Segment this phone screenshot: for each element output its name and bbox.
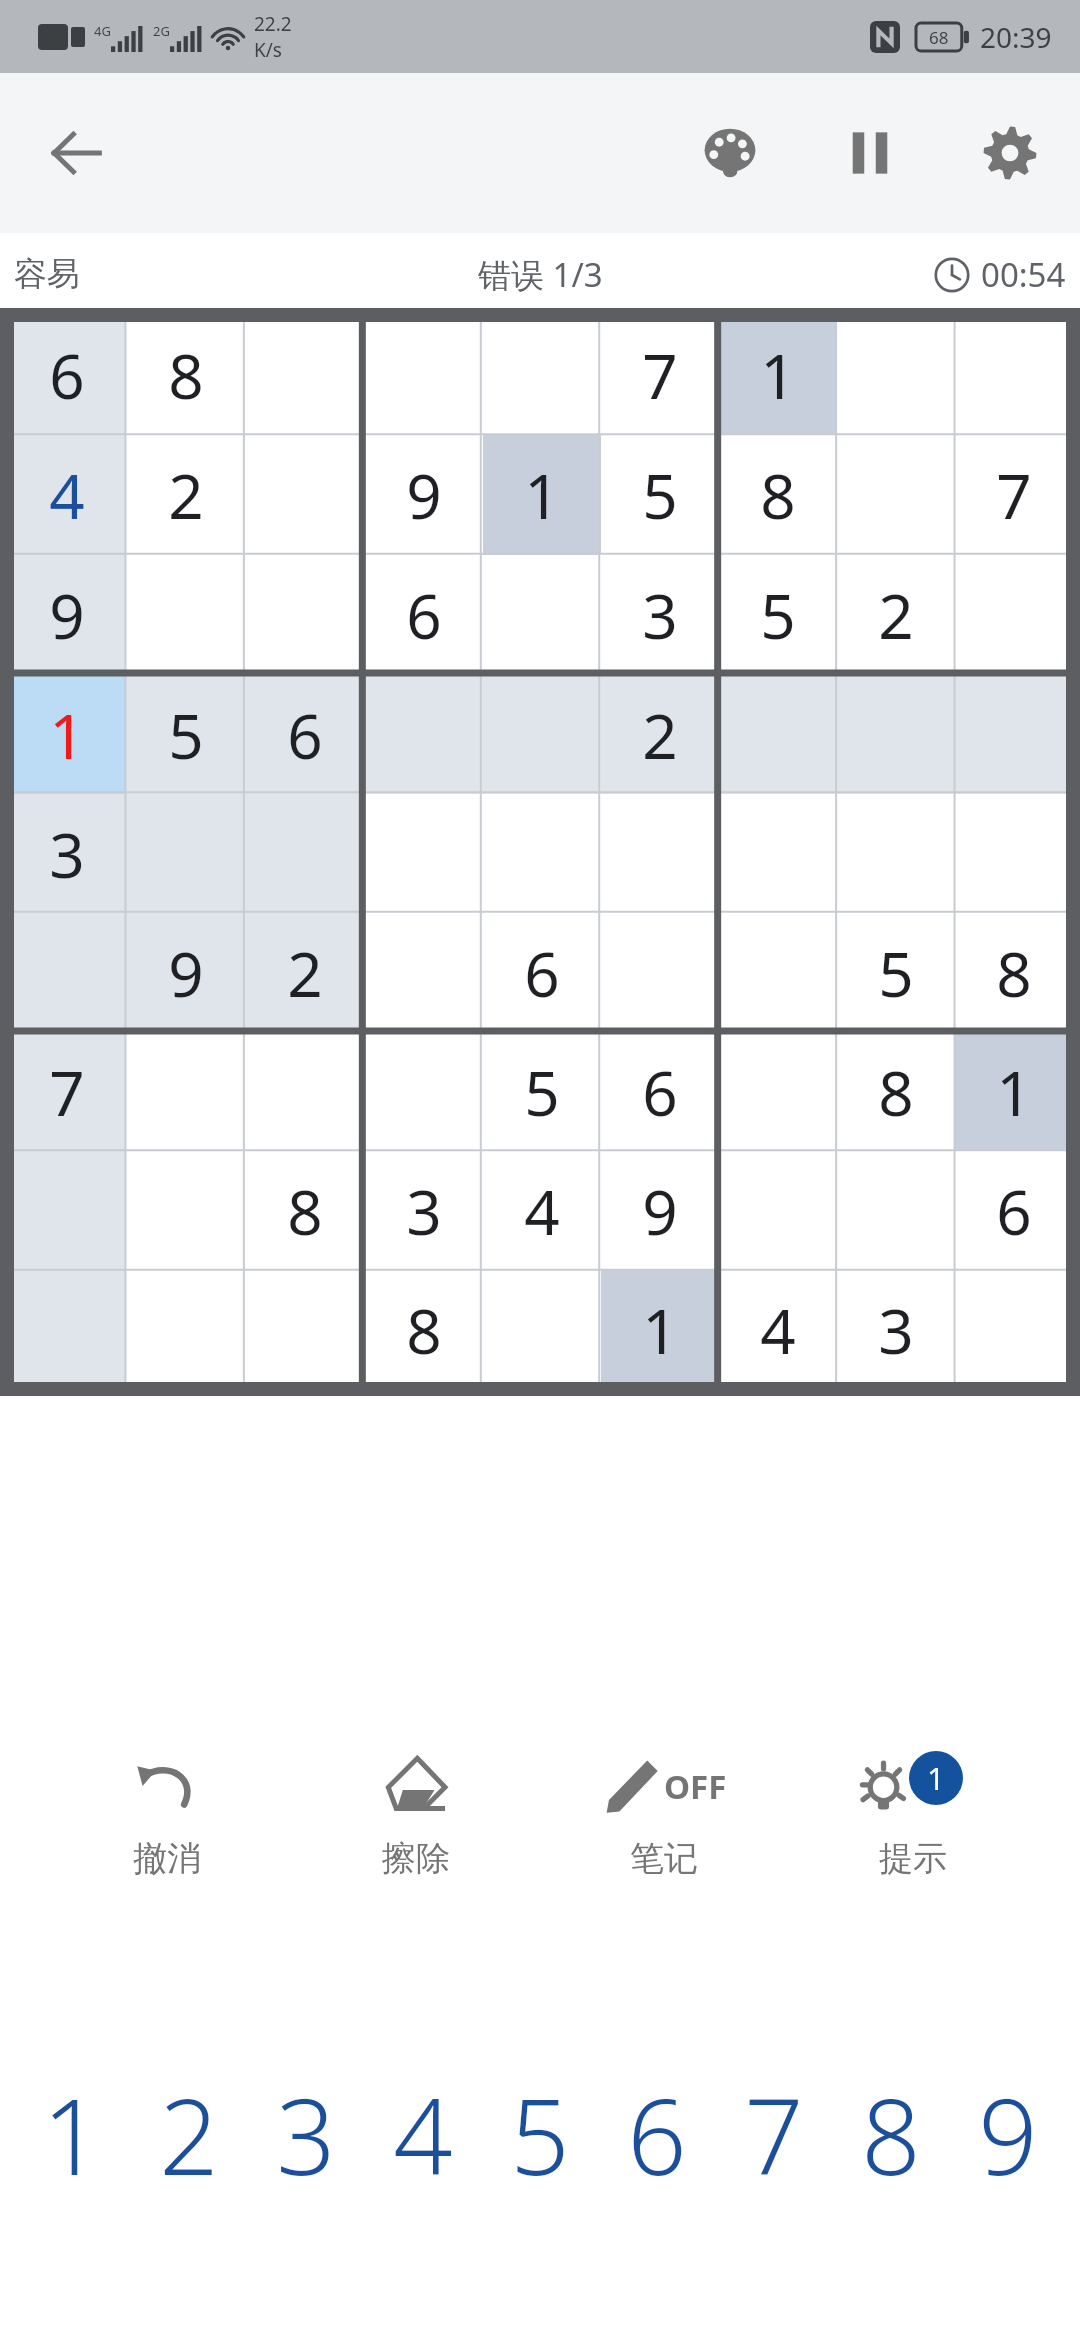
button[interactable]: 2 <box>837 555 955 675</box>
button[interactable]: 1 <box>7 675 126 794</box>
button[interactable] <box>483 555 601 675</box>
button[interactable]: 3 <box>7 794 126 913</box>
button[interactable]: 6 <box>601 1032 719 1151</box>
button[interactable]: 3 <box>364 1151 483 1270</box>
button[interactable] <box>601 794 719 913</box>
button[interactable]: 5 <box>126 675 245 794</box>
button[interactable]: 8 <box>245 1151 364 1270</box>
button[interactable] <box>7 1270 126 1389</box>
button[interactable] <box>364 675 483 794</box>
button[interactable] <box>245 435 364 555</box>
button[interactable]: 7 <box>955 435 1073 555</box>
button[interactable]: 8 <box>837 1032 955 1151</box>
button[interactable]: 5 <box>483 1032 601 1151</box>
button[interactable] <box>483 794 601 913</box>
button[interactable] <box>719 913 837 1032</box>
button[interactable]: 2 <box>126 435 245 555</box>
button[interactable] <box>719 794 837 913</box>
button[interactable] <box>719 1032 837 1151</box>
button[interactable] <box>245 1270 364 1389</box>
button[interactable] <box>837 1151 955 1270</box>
button[interactable] <box>837 794 955 913</box>
button[interactable]: 7 <box>601 315 719 435</box>
button[interactable] <box>483 1270 601 1389</box>
button[interactable]: 4 <box>7 435 126 555</box>
button[interactable] <box>837 675 955 794</box>
button[interactable]: 3 <box>247 2060 364 2210</box>
button[interactable]: 1 <box>719 315 837 435</box>
button[interactable]: 6 <box>955 1151 1073 1270</box>
button[interactable] <box>719 675 837 794</box>
button[interactable] <box>364 913 483 1032</box>
button[interactable] <box>7 913 126 1032</box>
button[interactable] <box>126 1032 245 1151</box>
button[interactable]: 5 <box>481 2060 598 2210</box>
button[interactable]: 4 <box>483 1151 601 1270</box>
button[interactable]: OFF <box>564 1733 764 1890</box>
button[interactable]: 8 <box>364 1270 483 1389</box>
button[interactable] <box>719 1151 837 1270</box>
button[interactable]: 9 <box>949 2060 1066 2210</box>
button[interactable]: 8 <box>126 315 245 435</box>
button[interactable]: 7 <box>7 1032 126 1151</box>
button[interactable] <box>483 315 601 435</box>
button[interactable] <box>955 675 1073 794</box>
button[interactable]: 2 <box>130 2060 247 2210</box>
button[interactable] <box>837 435 955 555</box>
button[interactable]: 1 <box>483 435 601 555</box>
button[interactable]: 2 <box>245 913 364 1032</box>
button[interactable] <box>245 555 364 675</box>
button[interactable]: 撤消 <box>67 1733 267 1890</box>
button[interactable]: 3 <box>837 1270 955 1389</box>
button[interactable]: 1 <box>955 1032 1073 1151</box>
button[interactable] <box>955 315 1073 435</box>
button[interactable]: 1 <box>601 1270 719 1389</box>
button[interactable]: 6 <box>245 675 364 794</box>
button[interactable]: Theme <box>682 105 778 201</box>
button[interactable]: 擦除 <box>316 1733 516 1890</box>
button[interactable]: Pause <box>822 105 918 201</box>
button[interactable]: 4 <box>719 1270 837 1389</box>
button[interactable]: 9 <box>364 435 483 555</box>
button[interactable]: 6 <box>364 555 483 675</box>
button[interactable] <box>955 794 1073 913</box>
button[interactable] <box>245 1032 364 1151</box>
button[interactable]: 5 <box>837 913 955 1032</box>
button[interactable]: 7 <box>715 2060 832 2210</box>
button[interactable] <box>126 555 245 675</box>
button[interactable] <box>483 675 601 794</box>
button[interactable]: 2 <box>601 675 719 794</box>
button[interactable]: Back <box>28 105 124 201</box>
button[interactable]: 4 <box>364 2060 481 2210</box>
button[interactable]: 9 <box>601 1151 719 1270</box>
button[interactable]: 9 <box>7 555 126 675</box>
button[interactable] <box>601 913 719 1032</box>
button[interactable]: 6 <box>483 913 601 1032</box>
staticText: 9 <box>406 453 442 537</box>
button[interactable]: 1 <box>14 2060 130 2210</box>
button[interactable] <box>364 794 483 913</box>
button[interactable]: 6 <box>7 315 126 435</box>
button[interactable]: 3 <box>601 555 719 675</box>
button[interactable] <box>126 1151 245 1270</box>
staticText: 8 <box>287 1169 323 1253</box>
button[interactable] <box>7 1151 126 1270</box>
button[interactable] <box>364 1032 483 1151</box>
button[interactable] <box>245 794 364 913</box>
button[interactable]: 9 <box>126 913 245 1032</box>
button[interactable] <box>955 555 1073 675</box>
button[interactable]: 5 <box>719 555 837 675</box>
button[interactable] <box>837 315 955 435</box>
button[interactable]: 8 <box>955 913 1073 1032</box>
button[interactable]: 1 <box>813 1733 1013 1890</box>
button[interactable]: 8 <box>719 435 837 555</box>
button[interactable]: 6 <box>598 2060 715 2210</box>
button[interactable]: 5 <box>601 435 719 555</box>
button[interactable] <box>955 1270 1073 1389</box>
button[interactable] <box>126 794 245 913</box>
button[interactable] <box>245 315 364 435</box>
button[interactable]: Settings <box>962 105 1058 201</box>
button[interactable]: 8 <box>832 2060 949 2210</box>
button[interactable] <box>364 315 483 435</box>
button[interactable] <box>126 1270 245 1389</box>
